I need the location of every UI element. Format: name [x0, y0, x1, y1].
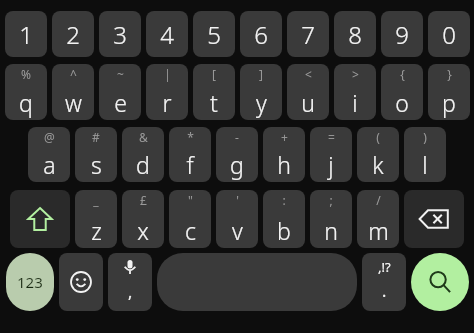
staticText: <	[305, 66, 312, 82]
button[interactable]: -	[216, 127, 258, 182]
button[interactable]: [	[193, 64, 235, 120]
button[interactable]: ^	[52, 64, 94, 120]
button[interactable]: ;	[310, 190, 352, 248]
button[interactable]: @	[28, 127, 70, 182]
staticText: -	[235, 129, 239, 145]
staticText: d	[136, 149, 150, 180]
staticText: 0	[442, 18, 456, 51]
button[interactable]: /	[357, 190, 399, 248]
staticText: k	[372, 149, 384, 180]
button[interactable]: "	[169, 190, 211, 248]
button[interactable]: ]	[240, 64, 282, 120]
button[interactable]: 6	[240, 11, 282, 57]
button[interactable]: >	[334, 64, 376, 120]
staticText: |	[164, 66, 171, 82]
staticText: a	[43, 149, 56, 180]
button[interactable]: <	[287, 64, 329, 120]
staticText: ^	[70, 66, 77, 82]
staticText: s	[91, 149, 102, 180]
staticText: (	[376, 129, 380, 145]
button[interactable]: #	[75, 127, 117, 182]
staticText: y	[256, 87, 267, 118]
button[interactable]: +	[263, 127, 305, 182]
staticText: '	[236, 192, 239, 208]
button[interactable]: :	[263, 190, 305, 248]
button[interactable]: |	[146, 64, 188, 120]
button[interactable]: 0	[428, 11, 470, 57]
button[interactable]: 1	[5, 11, 47, 57]
staticText: ,	[128, 281, 133, 303]
button[interactable]: 5	[193, 11, 235, 57]
button[interactable]: *	[169, 127, 211, 182]
staticText: 123	[17, 272, 43, 292]
staticText: r	[162, 87, 172, 118]
staticText: l	[422, 149, 428, 180]
staticText: 5	[207, 18, 221, 51]
staticText: e	[114, 87, 127, 118]
staticText: +	[281, 129, 288, 145]
staticText: /	[376, 192, 381, 208]
staticText: .	[382, 280, 387, 302]
staticText: >	[352, 66, 359, 82]
button[interactable]: Backspace	[404, 190, 464, 248]
button[interactable]: 4	[146, 11, 188, 57]
staticText: 8	[348, 18, 362, 51]
button[interactable]: &	[122, 127, 164, 182]
staticText: n	[324, 215, 338, 246]
button[interactable]: (	[357, 127, 399, 182]
staticText: 6	[254, 18, 268, 51]
staticText: f	[186, 149, 194, 180]
staticText: w	[65, 87, 82, 118]
staticText: q	[19, 87, 33, 118]
button[interactable]: '	[216, 190, 258, 248]
button[interactable]: Search	[411, 253, 469, 311]
staticText: _	[93, 192, 99, 208]
staticText: 4	[160, 18, 174, 51]
button[interactable]: Voice input	[108, 253, 152, 311]
staticText: 2	[66, 18, 80, 51]
staticText: c	[185, 215, 196, 246]
button[interactable]: 2	[52, 11, 94, 57]
button[interactable]: 9	[381, 11, 423, 57]
button[interactable]: {	[381, 64, 423, 120]
staticText: ,!?	[378, 258, 391, 276]
staticText: %	[21, 66, 31, 82]
button[interactable]: 123	[6, 253, 54, 311]
staticText: }	[447, 66, 452, 82]
staticText: £	[140, 192, 147, 208]
staticText: @	[44, 129, 55, 145]
staticText: ]	[259, 66, 263, 82]
button[interactable]: ~	[99, 64, 141, 120]
button[interactable]: =	[310, 127, 352, 182]
staticText: b	[277, 215, 291, 246]
staticText: i	[352, 87, 358, 118]
button[interactable]: Emoji	[59, 253, 103, 311]
staticText: h	[277, 149, 291, 180]
button[interactable]: %	[5, 64, 47, 120]
staticText: )	[423, 129, 427, 145]
staticText: ~	[117, 66, 124, 82]
staticText: o	[395, 87, 409, 118]
staticText: :	[282, 192, 286, 208]
staticText: #	[92, 129, 100, 145]
button[interactable]: _	[75, 190, 117, 248]
button[interactable]: 7	[287, 11, 329, 57]
staticText: m	[368, 215, 389, 246]
staticText: g	[230, 149, 244, 180]
staticText: 1	[19, 18, 33, 51]
staticText: v	[232, 215, 243, 246]
button[interactable]: 3	[99, 11, 141, 57]
staticText: 9	[395, 18, 409, 51]
button[interactable]: ,!?	[362, 253, 406, 311]
button[interactable]: Space	[157, 253, 357, 311]
staticText: [	[212, 66, 216, 82]
staticText: j	[328, 149, 334, 180]
staticText: z	[91, 215, 102, 246]
button[interactable]: )	[404, 127, 446, 182]
staticText: {	[400, 66, 405, 82]
button[interactable]: }	[428, 64, 470, 120]
button[interactable]: Shift	[10, 190, 70, 248]
button[interactable]: £	[122, 190, 164, 248]
button[interactable]: 8	[334, 11, 376, 57]
staticText: =	[328, 129, 335, 145]
